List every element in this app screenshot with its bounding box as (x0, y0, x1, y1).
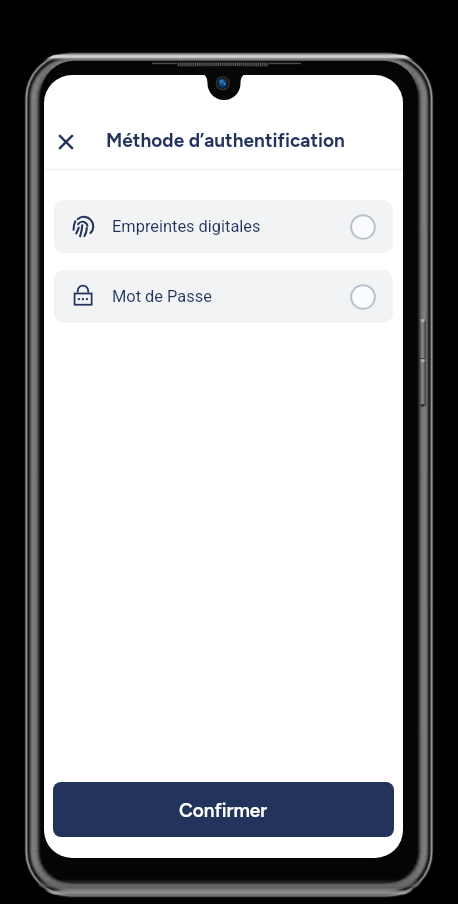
button[interactable]: Fermer (47, 123, 85, 161)
staticText: Confirmer (179, 799, 268, 822)
button[interactable]: Empreintes digitales (54, 200, 393, 253)
staticText: Empreintes digitales (112, 217, 261, 236)
button[interactable]: Mot de Passe (54, 270, 393, 323)
staticText: Méthode d’authentification (106, 129, 345, 152)
other: Mot de Passe (350, 284, 376, 310)
button[interactable]: Confirmer (53, 782, 394, 837)
other: Empreintes digitales (350, 214, 376, 240)
staticText: Mot de Passe (112, 287, 212, 306)
